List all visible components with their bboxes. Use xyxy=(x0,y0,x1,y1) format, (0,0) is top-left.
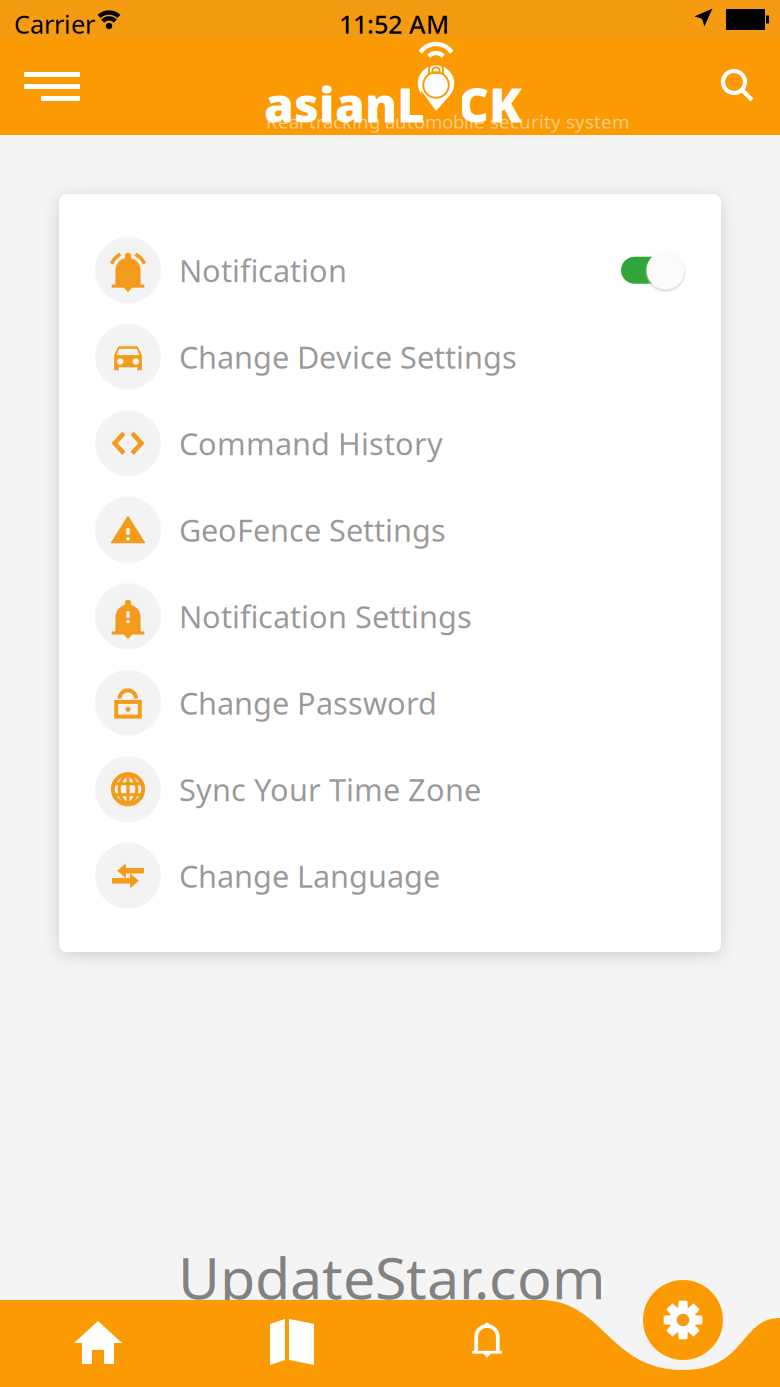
staticText: UpdateStar.com xyxy=(178,1239,606,1315)
button[interactable]: Notifications xyxy=(432,1301,542,1383)
staticText: Change Device Settings xyxy=(179,336,517,377)
button[interactable]: Map xyxy=(237,1301,347,1383)
button[interactable]: Home xyxy=(43,1301,153,1383)
button[interactable]: Sync Your Time Zone xyxy=(59,746,721,832)
button[interactable]: Settings xyxy=(643,1280,723,1360)
staticText: Notification Settings xyxy=(179,596,472,637)
button[interactable]: Change Password xyxy=(59,659,721,746)
staticText: 11:52 AM xyxy=(339,7,449,41)
staticText: Command History xyxy=(179,423,443,464)
staticText: Notification xyxy=(179,250,347,291)
staticText: GeoFence Settings xyxy=(179,509,446,550)
button[interactable]: Search xyxy=(706,57,770,115)
staticText: Change Password xyxy=(179,682,437,723)
staticText: asianL xyxy=(264,72,425,136)
button[interactable]: Change Device Settings xyxy=(59,313,721,400)
staticText: Real tracking automobile security system xyxy=(266,109,629,134)
button[interactable]: Command History xyxy=(59,400,721,486)
staticText: CK xyxy=(458,72,522,136)
button[interactable]: Notification xyxy=(59,227,721,313)
staticText: Change Language xyxy=(179,855,440,896)
button[interactable]: Change Language xyxy=(59,832,721,919)
button[interactable]: GeoFence Settings xyxy=(59,486,721,573)
button[interactable]: Notification Settings xyxy=(59,573,721,659)
button[interactable]: Menu xyxy=(8,57,96,115)
staticText: Carrier xyxy=(14,7,95,41)
staticText: Sync Your Time Zone xyxy=(179,769,481,810)
